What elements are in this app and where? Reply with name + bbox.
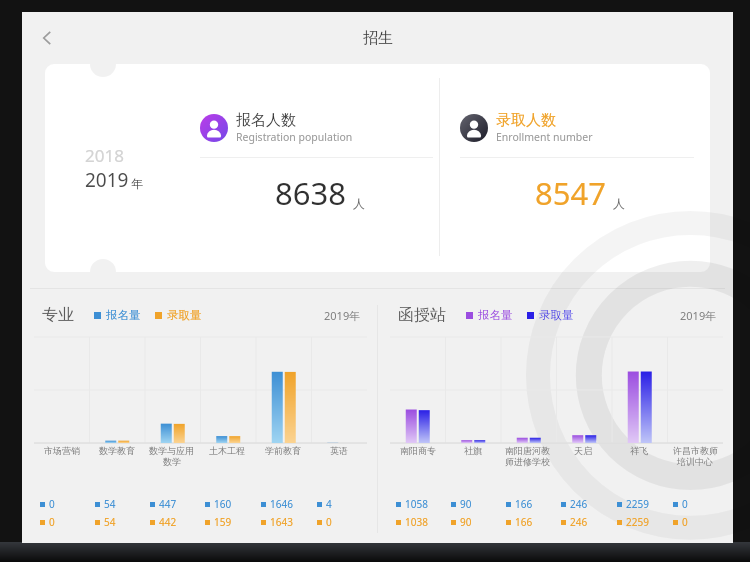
staticText: 8547 [535, 172, 606, 214]
button[interactable]: 录取人数 [440, 64, 700, 272]
staticText: 1038 [405, 515, 428, 529]
staticText: 英语 [330, 445, 348, 456]
staticText: 54 [104, 497, 116, 511]
staticText: 442 [159, 515, 177, 529]
staticText: 人 [613, 196, 625, 211]
staticText: 160 [214, 497, 232, 511]
staticText: 159 [214, 515, 232, 529]
staticText: 南阳商专 [400, 445, 436, 456]
staticText: 数学与应用 [149, 445, 194, 456]
staticText: 166 [515, 515, 533, 529]
staticText: Enrollment number [496, 130, 593, 144]
staticText: 4 [326, 497, 332, 511]
staticText: 0 [49, 497, 55, 511]
staticText: 2019年 [680, 308, 717, 323]
staticText: 0 [49, 515, 55, 529]
staticText: 2018 [85, 144, 124, 167]
staticText: 166 [515, 497, 533, 511]
staticText: 专业 [42, 305, 74, 325]
staticText: 246 [570, 515, 588, 529]
staticText: 招生 [363, 29, 393, 48]
staticText: 年 [131, 176, 143, 191]
staticText: 报名量 [478, 308, 513, 322]
staticText: 1643 [270, 515, 293, 529]
staticText: 90 [460, 497, 472, 511]
button[interactable]: Back [26, 17, 68, 59]
staticText: 天启 [574, 445, 592, 456]
staticText: 人 [353, 196, 365, 211]
staticText: 8638 [275, 172, 346, 214]
staticText: 90 [460, 515, 472, 529]
staticText: 录取量 [167, 308, 202, 322]
staticText: 土木工程 [209, 445, 245, 456]
staticText: 数学教育 [99, 445, 135, 456]
staticText: 0 [682, 515, 688, 529]
staticText: 许昌市教师 [673, 445, 718, 456]
staticText: 0 [326, 515, 332, 529]
staticText: 2259 [626, 515, 649, 529]
staticText: 2259 [626, 497, 649, 511]
staticText: 246 [570, 497, 588, 511]
staticText: 2019年 [324, 308, 361, 323]
staticText: 报名人数 [236, 111, 296, 130]
staticText: 南阳唐河教 [505, 445, 550, 456]
staticText: 报名量 [106, 308, 141, 322]
staticText: 2019 [85, 167, 129, 193]
staticText: 录取人数 [496, 111, 556, 130]
staticText: 录取量 [539, 308, 574, 322]
staticText: 师进修学校 [505, 456, 550, 467]
staticText: 市场营销 [44, 445, 80, 456]
staticText: 447 [159, 497, 177, 511]
button[interactable]: 报名人数 [180, 64, 439, 272]
staticText: 数学 [163, 456, 181, 467]
staticText: 祥飞 [630, 445, 648, 456]
staticText: 1646 [270, 497, 293, 511]
staticText: 0 [682, 497, 688, 511]
staticText: 培训中心 [677, 456, 713, 467]
staticText: Registration population [236, 130, 353, 144]
staticText: 社旗 [464, 445, 482, 456]
staticText: 学前教育 [265, 445, 301, 456]
staticText: 54 [104, 515, 116, 529]
staticText: 1058 [405, 497, 428, 511]
staticText: 函授站 [398, 305, 446, 325]
